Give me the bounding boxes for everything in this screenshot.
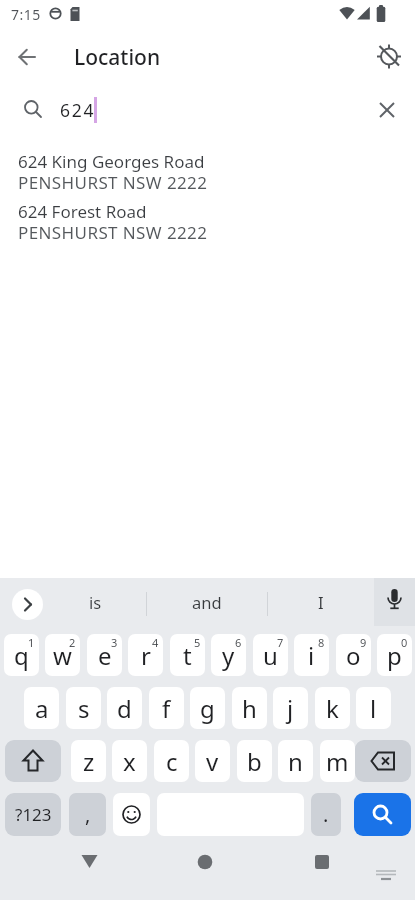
staticText: 624 (60, 98, 96, 122)
button[interactable] (65, 838, 113, 886)
staticText: 7 (277, 635, 284, 650)
staticText: x (123, 745, 136, 778)
staticText: is (89, 591, 102, 613)
button[interactable]: b (237, 740, 272, 782)
staticText: d (117, 692, 132, 725)
button[interactable]: d (107, 687, 142, 729)
button[interactable]: ?123 (5, 793, 61, 836)
button[interactable] (0, 146, 415, 196)
button[interactable]: h (232, 687, 267, 729)
button[interactable] (374, 578, 415, 626)
button[interactable] (0, 196, 415, 246)
staticText: PENSHURST NSW 2222 (18, 171, 208, 194)
button[interactable]: c (154, 740, 189, 782)
staticText: p (387, 639, 402, 672)
button[interactable]: k (315, 687, 350, 729)
staticText: 624 King Georges Road (18, 150, 205, 173)
staticText: 9 (360, 635, 367, 650)
staticText: . (323, 801, 329, 828)
button[interactable]: s (66, 687, 101, 729)
staticText: 6 (235, 635, 242, 650)
button[interactable]: I (268, 578, 373, 626)
staticText: j (287, 692, 294, 725)
staticText: 5 (194, 635, 201, 650)
button[interactable] (355, 740, 411, 782)
staticText: , (85, 801, 91, 828)
staticText: s (78, 692, 90, 725)
button[interactable]: a (24, 687, 59, 729)
staticText: c (166, 745, 178, 778)
button[interactable]: w (45, 634, 80, 676)
staticText: 0 (401, 635, 408, 650)
button[interactable] (4, 34, 50, 80)
button[interactable]: o (336, 634, 371, 676)
button[interactable]: z (71, 740, 106, 782)
staticText: 3 (111, 635, 118, 650)
button[interactable]: j (273, 687, 308, 729)
button[interactable] (113, 793, 150, 836)
staticText: k (326, 692, 339, 725)
staticText: r (141, 639, 151, 672)
staticText: m (326, 745, 349, 778)
staticText: e (98, 639, 112, 672)
button[interactable]: . (311, 793, 341, 836)
button[interactable] (298, 838, 346, 886)
button[interactable] (354, 793, 411, 836)
staticText: and (192, 591, 222, 613)
button[interactable]: e (87, 634, 122, 676)
button[interactable]: f (149, 687, 184, 729)
staticText: t (183, 639, 192, 672)
staticText: o (346, 639, 361, 672)
button[interactable]: i (294, 634, 329, 676)
staticText: 1 (28, 635, 35, 650)
button[interactable]: t (170, 634, 205, 676)
staticText: u (263, 639, 278, 672)
staticText: 8 (318, 635, 325, 650)
staticText: y (222, 639, 235, 672)
button[interactable]: r (128, 634, 163, 676)
button[interactable] (181, 838, 229, 886)
staticText: ?123 (15, 803, 52, 826)
staticText: I (318, 591, 324, 613)
staticText: a (35, 692, 49, 725)
staticText: z (83, 745, 95, 778)
button[interactable] (366, 852, 406, 892)
staticText: n (288, 745, 303, 778)
button[interactable]: x (112, 740, 147, 782)
staticText: h (242, 692, 257, 725)
button[interactable] (364, 87, 410, 133)
button[interactable]: m (320, 740, 355, 782)
button[interactable]: and (147, 578, 267, 626)
staticText: 624 Forest Road (18, 200, 147, 223)
staticText: Location (74, 43, 161, 72)
button[interactable]: n (278, 740, 313, 782)
button[interactable]: v (195, 740, 230, 782)
staticText: 4 (152, 635, 159, 650)
staticText: i (308, 639, 315, 672)
staticText: b (247, 745, 262, 778)
staticText: g (200, 692, 215, 725)
button[interactable]: is (44, 578, 146, 626)
button[interactable]: l (356, 687, 391, 729)
button[interactable]: p (377, 634, 412, 676)
button[interactable] (5, 740, 61, 782)
button[interactable] (366, 34, 412, 80)
staticText: v (206, 745, 219, 778)
staticText: PENSHURST NSW 2222 (18, 221, 208, 244)
button[interactable]: g (190, 687, 225, 729)
staticText: 2 (69, 635, 76, 650)
staticText: l (370, 692, 377, 725)
button[interactable] (12, 589, 43, 620)
button[interactable]: q (4, 634, 39, 676)
button[interactable]: , (69, 793, 106, 836)
button[interactable]: u (253, 634, 288, 676)
button[interactable]: y (211, 634, 246, 676)
staticText: w (53, 639, 72, 672)
staticText: 7:15 (11, 5, 41, 24)
staticText: f (162, 692, 171, 725)
staticText: q (14, 639, 29, 672)
